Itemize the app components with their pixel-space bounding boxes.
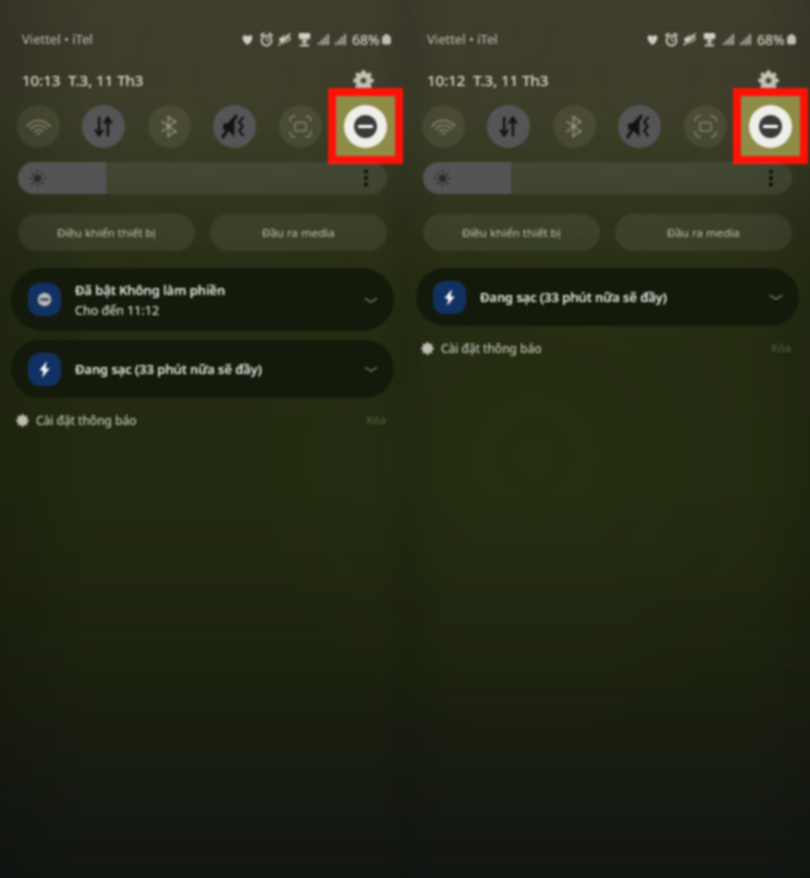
button[interactable]: Điều khiển thiết bị	[18, 214, 195, 251]
staticText: 68%	[352, 30, 380, 49]
button[interactable]: Điều khiển thiết bị	[423, 214, 600, 251]
staticText: 10:12 T.3, 11 Th3	[427, 70, 549, 90]
staticText: Viettel • iTel	[427, 30, 498, 48]
button[interactable]: Cài đặt thông báo	[16, 412, 137, 428]
button[interactable]: Quick setting toggle	[618, 105, 661, 148]
other: Expand	[769, 290, 783, 304]
button[interactable]: Quick setting toggle	[422, 105, 465, 148]
button[interactable]: Brightness	[18, 162, 387, 194]
button[interactable]: Đang sạc (33 phút nữa sẽ đầy)	[11, 340, 394, 398]
button[interactable]: Do not disturb	[737, 92, 804, 160]
button[interactable]: Quick setting toggle	[148, 105, 191, 148]
staticText: Điều khiển thiết bị	[462, 225, 561, 241]
button[interactable]: Quick setting toggle	[684, 105, 727, 148]
staticText: Viettel • iTel	[22, 30, 93, 48]
button[interactable]: Do not disturb	[332, 92, 399, 160]
staticText: Đầu ra media	[667, 225, 740, 241]
button[interactable]: Cài đặt thông báo	[421, 340, 542, 356]
button[interactable]: Quick setting toggle	[82, 105, 125, 148]
button[interactable]: Quick setting toggle	[487, 105, 530, 148]
staticText: Đang sạc (33 phút nữa sẽ đầy)	[75, 360, 262, 378]
button[interactable]: Settings	[349, 66, 377, 94]
button[interactable]: Quick setting toggle	[279, 105, 322, 148]
button[interactable]: Quick setting toggle	[553, 105, 596, 148]
button[interactable]: Đã bật Không làm phiền	[11, 268, 394, 331]
button[interactable]: Đang sạc (33 phút nữa sẽ đầy)	[416, 268, 799, 326]
other: Expand	[364, 293, 378, 307]
staticText: Đã bật Không làm phiền	[75, 281, 226, 299]
button[interactable]: Quick setting toggle	[17, 105, 60, 148]
staticText: Điều khiển thiết bị	[57, 225, 156, 241]
staticText: 68%	[757, 30, 785, 49]
button[interactable]: Xóa	[366, 412, 387, 428]
staticText: 10:13 T.3, 11 Th3	[22, 70, 144, 90]
button[interactable]: Settings	[754, 66, 782, 94]
staticText: Cài đặt thông báo	[36, 412, 137, 428]
button[interactable]: Đầu ra media	[210, 214, 387, 251]
staticText: Đầu ra media	[262, 225, 335, 241]
button[interactable]: Xóa	[771, 340, 792, 356]
button[interactable]: Brightness	[423, 162, 792, 194]
button[interactable]: Quick setting toggle	[213, 105, 256, 148]
other: Expand	[364, 362, 378, 376]
button[interactable]: Đầu ra media	[615, 214, 792, 251]
staticText: Đang sạc (33 phút nữa sẽ đầy)	[480, 288, 667, 306]
staticText: Cài đặt thông báo	[441, 340, 542, 356]
staticText: Cho đến 11:12	[75, 302, 160, 319]
